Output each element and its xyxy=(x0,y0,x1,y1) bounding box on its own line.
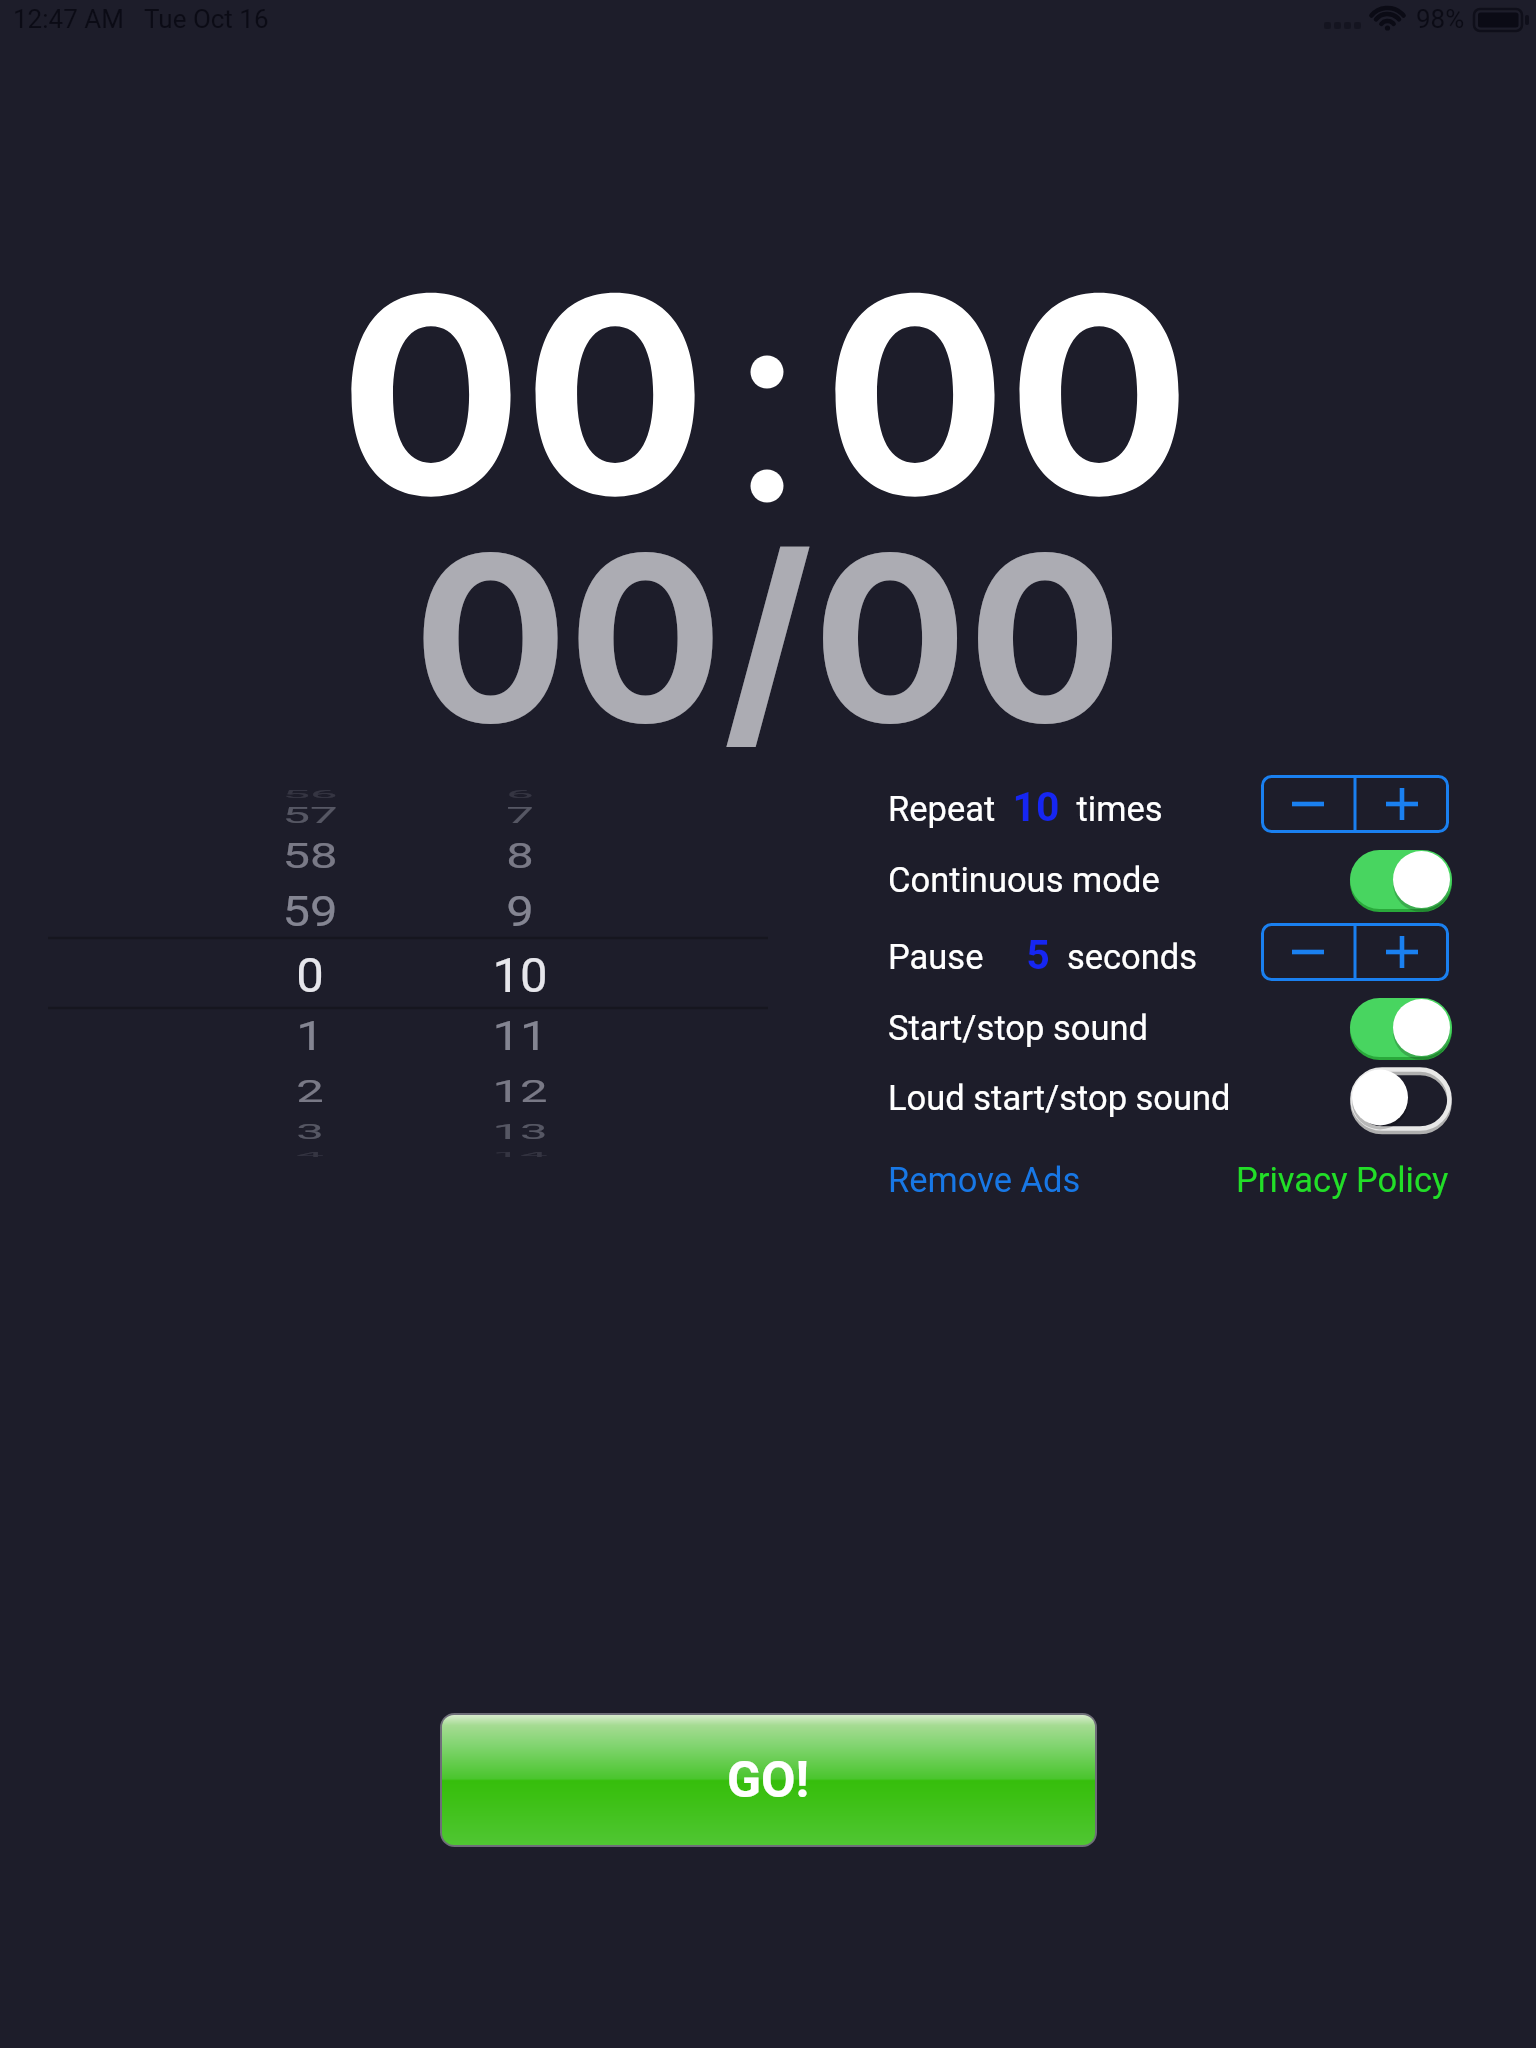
staticText: Continuous mode xyxy=(888,860,1160,900)
button[interactable]: Minutes picker xyxy=(48,780,408,1160)
button[interactable]: Seconds picker xyxy=(408,780,768,1160)
staticText: Loud start/stop sound xyxy=(888,1078,1231,1118)
staticText: 59 xyxy=(282,887,338,936)
staticText: Repeat 10 times xyxy=(888,783,1163,831)
staticText: 12 xyxy=(492,1073,548,1110)
staticText: Pause 5 seconds xyxy=(888,931,1198,979)
staticText: 7 xyxy=(506,804,534,829)
button[interactable]: Decrease xyxy=(1261,775,1355,833)
staticText: 00 xyxy=(823,230,1192,560)
button[interactable]: Increase xyxy=(1355,775,1449,833)
staticText: 58 xyxy=(282,836,338,877)
staticText: 11 xyxy=(492,1013,548,1060)
staticText: 9 xyxy=(506,887,534,936)
button[interactable]: Remove Ads xyxy=(880,1149,1088,1211)
staticText: 14 xyxy=(492,1149,548,1159)
staticText: 56 xyxy=(282,788,338,800)
staticText: 98% xyxy=(1416,4,1465,34)
staticText: 10 xyxy=(492,947,548,1004)
staticText: 2 xyxy=(296,1073,324,1110)
button[interactable]: Decrease xyxy=(1261,923,1355,981)
staticText: Start/stop sound xyxy=(888,1008,1148,1048)
staticText: 6 xyxy=(506,788,534,800)
staticText: Remove Ads xyxy=(888,1160,1081,1200)
staticText: Tue Oct 16 xyxy=(144,4,269,34)
button[interactable]: Start/stop sound xyxy=(1350,998,1452,1060)
button[interactable]: Privacy Policy xyxy=(1228,1149,1456,1211)
staticText: 00 xyxy=(339,230,708,560)
staticText: 0 xyxy=(296,947,324,1004)
button[interactable]: Increase xyxy=(1355,923,1449,981)
button[interactable]: Loud start/stop sound xyxy=(1350,1068,1452,1130)
staticText: GO! xyxy=(727,1751,810,1810)
staticText: 3 xyxy=(296,1120,324,1144)
button[interactable]: Continuous mode xyxy=(1350,850,1452,912)
button[interactable]: GO! xyxy=(442,1715,1095,1845)
staticText: 1 xyxy=(296,1013,324,1060)
staticText: 4 xyxy=(296,1149,324,1159)
staticText: 13 xyxy=(492,1120,548,1144)
staticText: 00/00 xyxy=(413,499,1123,777)
staticText: 12:47 AM xyxy=(13,4,124,34)
staticText: 8 xyxy=(506,836,534,877)
staticText: 57 xyxy=(282,804,338,829)
staticText: Privacy Policy xyxy=(1236,1160,1449,1200)
